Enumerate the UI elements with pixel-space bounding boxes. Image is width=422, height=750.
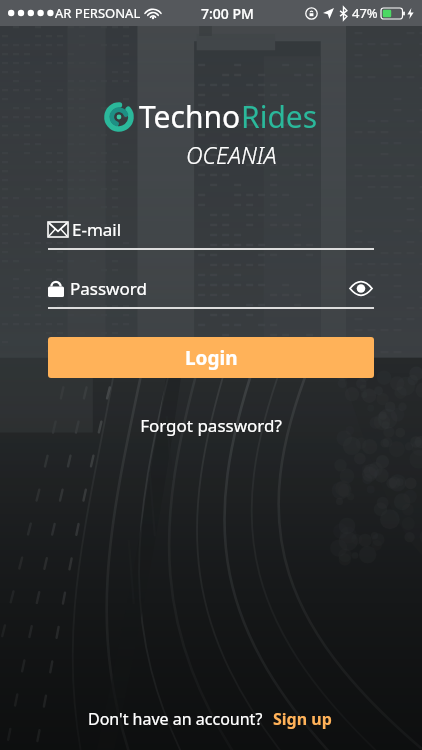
staticText: Sign up bbox=[273, 708, 332, 730]
staticText: AR PERSONAL bbox=[55, 4, 141, 22]
button[interactable]: Password bbox=[48, 274, 374, 302]
staticText: OCEANIA bbox=[186, 139, 277, 170]
staticText: E-mail bbox=[72, 218, 122, 241]
staticText: Rides bbox=[241, 96, 318, 137]
staticText: Password bbox=[70, 277, 147, 300]
staticText: Techno bbox=[139, 96, 241, 137]
button[interactable]: Login bbox=[48, 337, 374, 378]
staticText: Don't have an account? bbox=[88, 708, 263, 730]
button[interactable]: E-mail bbox=[48, 215, 374, 243]
staticText: Login bbox=[185, 345, 238, 371]
staticText: 7:00 PM bbox=[201, 4, 254, 23]
staticText: Forgot password? bbox=[140, 414, 282, 437]
staticText: 47% bbox=[352, 4, 378, 22]
button[interactable]: Sign up bbox=[271, 704, 334, 734]
button[interactable]: Show password bbox=[348, 275, 374, 301]
button[interactable]: Forgot password? bbox=[130, 410, 292, 441]
